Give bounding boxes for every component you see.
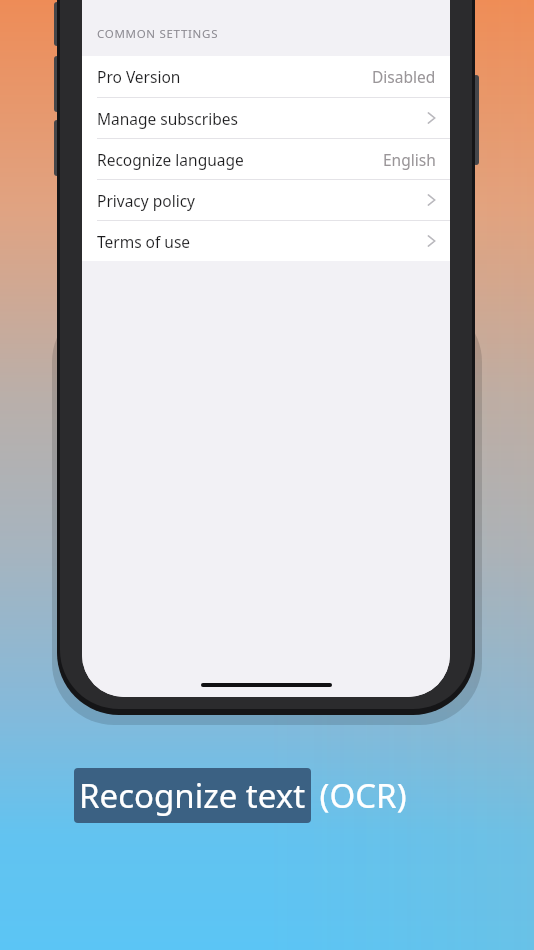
staticText: (OCR)	[311, 773, 407, 818]
button[interactable]: Terms of use	[82, 220, 450, 261]
button[interactable]: Pro Version	[82, 56, 450, 97]
staticText: Pro Version	[97, 66, 181, 87]
button[interactable]: Privacy policy	[82, 179, 450, 220]
staticText: Disabled	[372, 66, 436, 87]
staticText: Recognize text	[79, 773, 306, 818]
button[interactable]: Manage subscribes	[82, 97, 450, 138]
button[interactable]: Recognize language	[82, 138, 450, 179]
staticText: Privacy policy	[97, 190, 195, 211]
staticText: Recognize language	[97, 149, 244, 170]
staticText: Manage subscribes	[97, 108, 238, 129]
staticText: English	[383, 149, 436, 170]
staticText: COMMON SETTINGS	[97, 26, 219, 42]
staticText: Terms of use	[97, 231, 191, 252]
